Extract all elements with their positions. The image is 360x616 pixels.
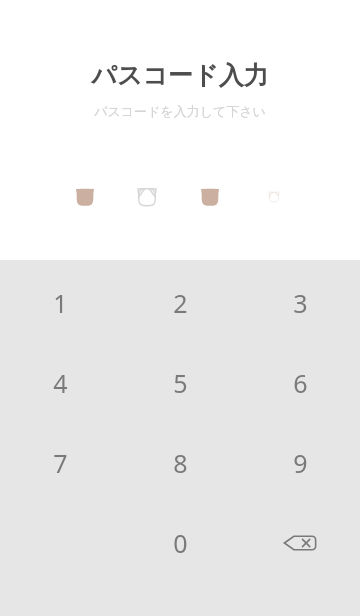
staticText: 4 [53,366,68,400]
staticText: 7 [53,446,68,480]
button[interactable]: Backspace [252,506,348,580]
staticText: 9 [293,446,308,480]
staticText: 2 [173,286,188,320]
button[interactable]: 0 [132,506,228,580]
staticText: 3 [293,286,308,320]
staticText: パスコードを入力して下さい [94,103,266,119]
staticText: 6 [293,366,308,400]
staticText: 1 [53,286,68,320]
staticText: パスコード入力 [91,60,269,91]
staticText: 8 [173,446,188,480]
button[interactable]: 9 [252,426,348,500]
button[interactable]: 1 [12,266,108,340]
button[interactable]: 6 [252,346,348,420]
button[interactable]: 3 [252,266,348,340]
staticText: 5 [173,366,188,400]
button[interactable]: 7 [12,426,108,500]
button[interactable]: 8 [132,426,228,500]
button[interactable]: 2 [132,266,228,340]
button[interactable]: 4 [12,346,108,420]
staticText: 0 [173,526,188,560]
button[interactable]: 5 [132,346,228,420]
